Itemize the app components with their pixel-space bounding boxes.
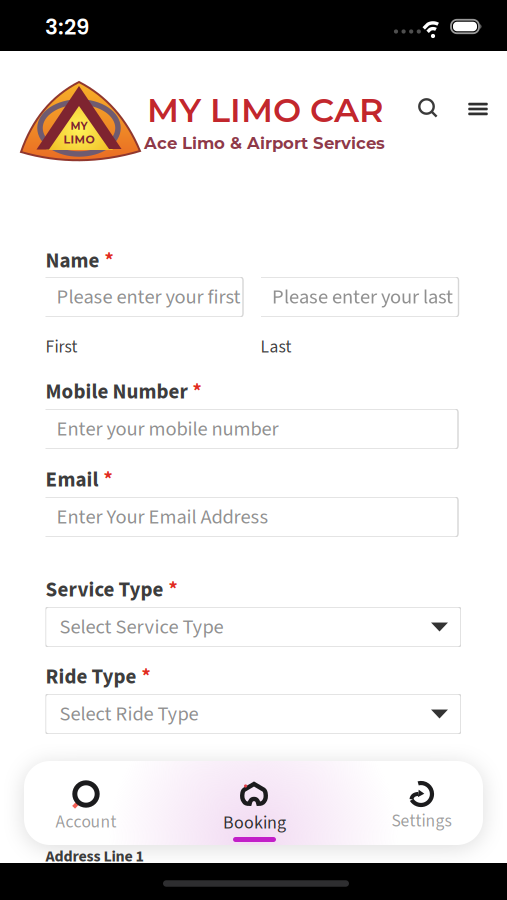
staticText: MY <box>70 120 87 132</box>
staticText: Booking <box>223 810 286 836</box>
staticText: Name <box>45 246 99 276</box>
staticText: Enter your mobile number <box>56 414 278 444</box>
staticText: 3:29 <box>45 12 89 42</box>
staticText: Enter Your Email Address <box>56 502 268 532</box>
staticText: Ace Limo & Airport Services <box>144 133 385 153</box>
button[interactable]: Enter your mobile number <box>45 409 461 449</box>
staticText: Service Type <box>45 575 163 605</box>
button[interactable]: Enter Your Email Address <box>45 497 461 537</box>
button[interactable]: Settings <box>361 761 481 845</box>
staticText: First <box>45 334 77 359</box>
staticText: * <box>141 662 150 690</box>
staticText: Select Service Type <box>59 612 223 642</box>
staticText: * <box>104 246 113 274</box>
staticText: Address Line 1 <box>45 845 143 868</box>
staticText: Account <box>55 809 116 834</box>
staticText: * <box>103 465 112 493</box>
staticText: * <box>192 377 201 405</box>
staticText: MY LIMO CAR <box>147 90 383 130</box>
button[interactable]: Select Ride Type <box>45 694 461 734</box>
button[interactable]: Select Service Type <box>45 607 461 647</box>
staticText: Mobile Number <box>45 377 187 407</box>
button[interactable]: Please enter your first name <box>45 277 246 317</box>
button[interactable]: Menu <box>463 95 493 123</box>
staticText: Select Ride Type <box>59 699 198 729</box>
staticText: Settings <box>391 808 451 833</box>
button[interactable]: Booking <box>194 761 314 845</box>
button[interactable]: Search <box>414 94 442 122</box>
staticText: Ride Type <box>45 662 136 692</box>
button[interactable]: Please enter your last name <box>261 277 461 317</box>
staticText: Please enter your last name <box>272 282 505 312</box>
staticText: Last <box>260 334 291 359</box>
staticText: * <box>168 575 177 603</box>
staticText: Please enter your first name <box>56 282 292 312</box>
staticText: Email <box>45 465 98 495</box>
staticText: LIMO <box>63 133 94 146</box>
button[interactable]: Account <box>26 761 146 845</box>
